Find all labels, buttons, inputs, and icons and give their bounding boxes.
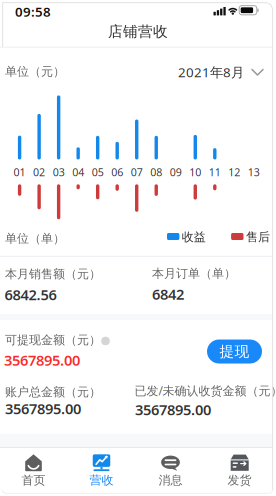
staticText: 账户总金额（元） xyxy=(5,385,101,399)
staticText: 发货 xyxy=(227,473,251,487)
staticText: 提现 xyxy=(219,342,249,360)
staticText: 08 xyxy=(150,165,162,179)
staticText: 单位（元） xyxy=(5,64,65,79)
staticText: 10 xyxy=(189,165,201,179)
staticText: 首页 xyxy=(21,473,45,487)
staticText: 本月销售额（元） xyxy=(5,267,101,281)
staticText: 09 xyxy=(170,165,182,179)
staticText: 05 xyxy=(92,165,104,179)
button[interactable]: 提现 xyxy=(207,339,262,363)
button[interactable]: 发货 xyxy=(206,448,272,495)
staticText: 01 xyxy=(14,165,26,179)
staticText: 3567895.00 xyxy=(135,400,211,419)
staticText: 02 xyxy=(33,165,45,179)
staticText: 04 xyxy=(72,165,84,179)
staticText: 3567895.00 xyxy=(5,399,81,418)
staticText: 03 xyxy=(53,165,65,179)
staticText: 6842.56 xyxy=(4,285,56,304)
staticText: 消息 xyxy=(158,473,182,487)
staticText: 已发/未确认收货金额（元） xyxy=(134,382,276,398)
staticText: 3567895.00 xyxy=(4,350,80,370)
staticText: 2021年8月 xyxy=(178,63,244,81)
staticText: 售后 xyxy=(246,230,270,244)
staticText: 收益 xyxy=(182,230,206,244)
staticText: 营收 xyxy=(89,473,113,487)
staticText: 12 xyxy=(228,165,240,179)
staticText: 本月订单（单） xyxy=(152,266,236,281)
staticText: 06 xyxy=(111,165,123,179)
staticText: 店铺营收 xyxy=(108,22,168,40)
staticText: 11 xyxy=(209,165,221,179)
staticText: 单位（单） xyxy=(5,231,65,246)
staticText: 6842 xyxy=(152,284,184,304)
button[interactable]: 营收 xyxy=(68,448,134,495)
button[interactable] xyxy=(101,337,110,345)
button[interactable]: 消息 xyxy=(137,448,203,495)
button[interactable]: 2021年8月 xyxy=(174,61,264,83)
staticText: 可提现金额（元） xyxy=(5,333,101,347)
button[interactable]: 首页 xyxy=(0,448,66,495)
staticText: 07 xyxy=(131,165,143,179)
staticText: 13 xyxy=(248,165,260,179)
staticText: 09:58 xyxy=(15,3,51,20)
